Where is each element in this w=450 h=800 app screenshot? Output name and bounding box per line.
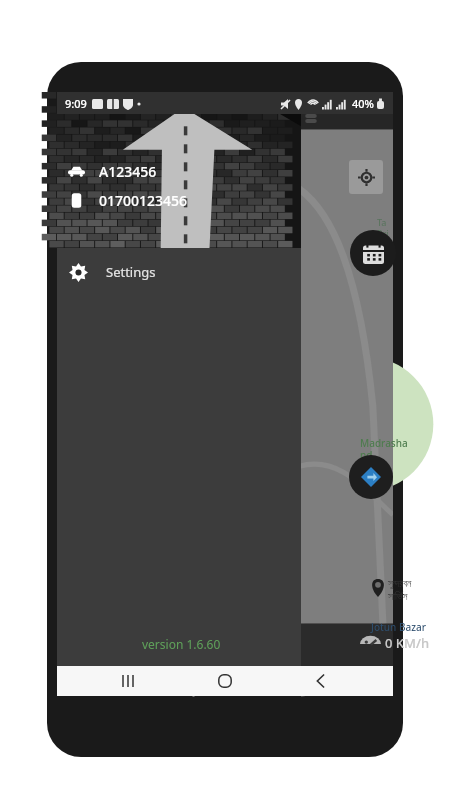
button[interactable]: Recents [105, 666, 153, 696]
button[interactable]: Calendar [350, 230, 396, 276]
staticText: 40% [352, 96, 374, 111]
staticText: সুন্দরবন [388, 579, 412, 589]
staticText: Pri [377, 227, 389, 239]
staticText: Ta [377, 216, 387, 228]
button[interactable]: Traffic [294, 99, 328, 133]
staticText: Settings [106, 263, 156, 281]
button[interactable]: Navigate [349, 455, 393, 499]
button[interactable]: My location [349, 160, 383, 194]
staticText: version 1.6.60 [142, 636, 221, 652]
staticText: 01700123456 [99, 191, 188, 210]
button[interactable]: Back [297, 666, 345, 696]
button[interactable]: Settings [57, 248, 301, 296]
staticText: 9:09 [65, 96, 87, 111]
staticText: য়ামসা [360, 460, 375, 468]
staticText: সার্ভিস [388, 592, 408, 602]
staticText: A123456 [99, 162, 157, 181]
staticText: 0 KM/h [385, 634, 430, 652]
button[interactable]: Home [201, 666, 249, 696]
staticText: nd [360, 448, 373, 462]
staticText: Jotun Bazar [371, 620, 426, 634]
staticText: Madrasha [360, 436, 408, 450]
